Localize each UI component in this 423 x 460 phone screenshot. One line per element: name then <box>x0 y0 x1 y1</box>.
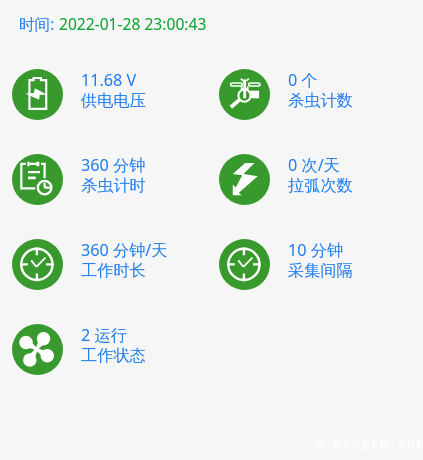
staticText: 10 分钟 <box>288 240 344 261</box>
staticText: 工作状态 <box>81 346 146 367</box>
staticText: 供电电压 <box>81 91 146 112</box>
staticText: 时间: <box>19 13 59 34</box>
staticText: 2 运行 <box>81 325 127 346</box>
button[interactable]: 杀虫计时 <box>12 154 208 205</box>
staticText: 360 分钟/天 <box>81 240 168 261</box>
other: 杀虫计数 <box>219 69 270 120</box>
staticText: 2022-01-28 23:00:43 <box>59 13 207 34</box>
staticText: 工作时长 <box>81 261 146 282</box>
staticText: 拉弧次数 <box>288 176 353 197</box>
button[interactable]: 工作状态 <box>12 324 208 375</box>
button[interactable]: 工作时长 <box>12 239 208 290</box>
staticText: 11.68 V <box>81 70 137 91</box>
other: 工作状态 <box>12 324 63 375</box>
staticText: 0 个 <box>288 70 318 91</box>
staticText: 360 分钟 <box>81 155 146 176</box>
other: 采集间隔 <box>219 239 270 290</box>
staticText: 采集间隔 <box>288 261 353 282</box>
staticText: 杀虫计数 <box>288 91 353 112</box>
other: 供电电压 <box>12 69 63 120</box>
button[interactable]: 拉弧次数 <box>219 154 415 205</box>
staticText: 0 次/天 <box>288 155 340 176</box>
staticText: 杀虫计时 <box>81 176 146 197</box>
other: 工作时长 <box>12 239 63 290</box>
button[interactable]: 供电电压 <box>12 69 208 120</box>
other: 杀虫计时 <box>12 154 63 205</box>
other: 拉弧次数 <box>219 154 270 205</box>
button[interactable]: 采集间隔 <box>219 239 415 290</box>
button[interactable]: 杀虫计数 <box>219 69 415 120</box>
